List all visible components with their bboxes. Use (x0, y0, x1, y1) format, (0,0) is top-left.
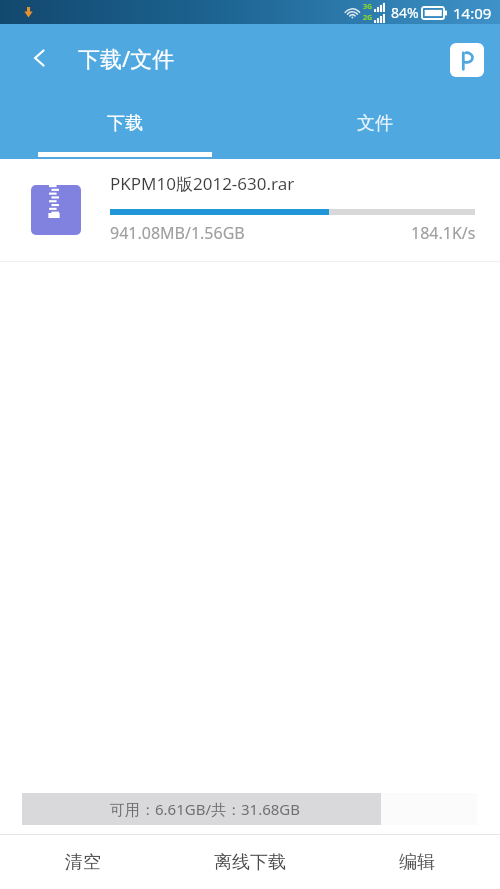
staticText: 编辑 (399, 851, 435, 874)
staticText: 清空 (65, 851, 101, 874)
button[interactable]: 离线下载 (166, 835, 333, 889)
staticText: 84% (391, 3, 419, 22)
staticText: PKPM10版2012-630.rar (110, 172, 295, 195)
button[interactable]: 下载 (0, 109, 250, 159)
staticText: 可用：6.61GB/共：31.68GB (110, 799, 301, 819)
button[interactable]: PKPM10版2012-630.rar (0, 159, 500, 261)
staticText: 3G (363, 2, 373, 12)
staticText: 941.08MB/1.56GB (110, 222, 245, 244)
staticText: 14:09 (453, 3, 492, 23)
button[interactable]: Back (12, 30, 68, 86)
staticText: 离线下载 (214, 851, 286, 874)
staticText: 184.1K/s (411, 222, 476, 244)
staticText: 下载 (107, 112, 143, 135)
button[interactable]: 文件 (250, 109, 500, 159)
button[interactable]: App home (450, 43, 484, 77)
button[interactable]: 清空 (0, 835, 166, 889)
button[interactable]: 编辑 (333, 835, 500, 889)
staticText: 文件 (357, 112, 393, 135)
staticText: 下载/文件 (78, 43, 175, 73)
staticText: 2G (363, 13, 373, 23)
